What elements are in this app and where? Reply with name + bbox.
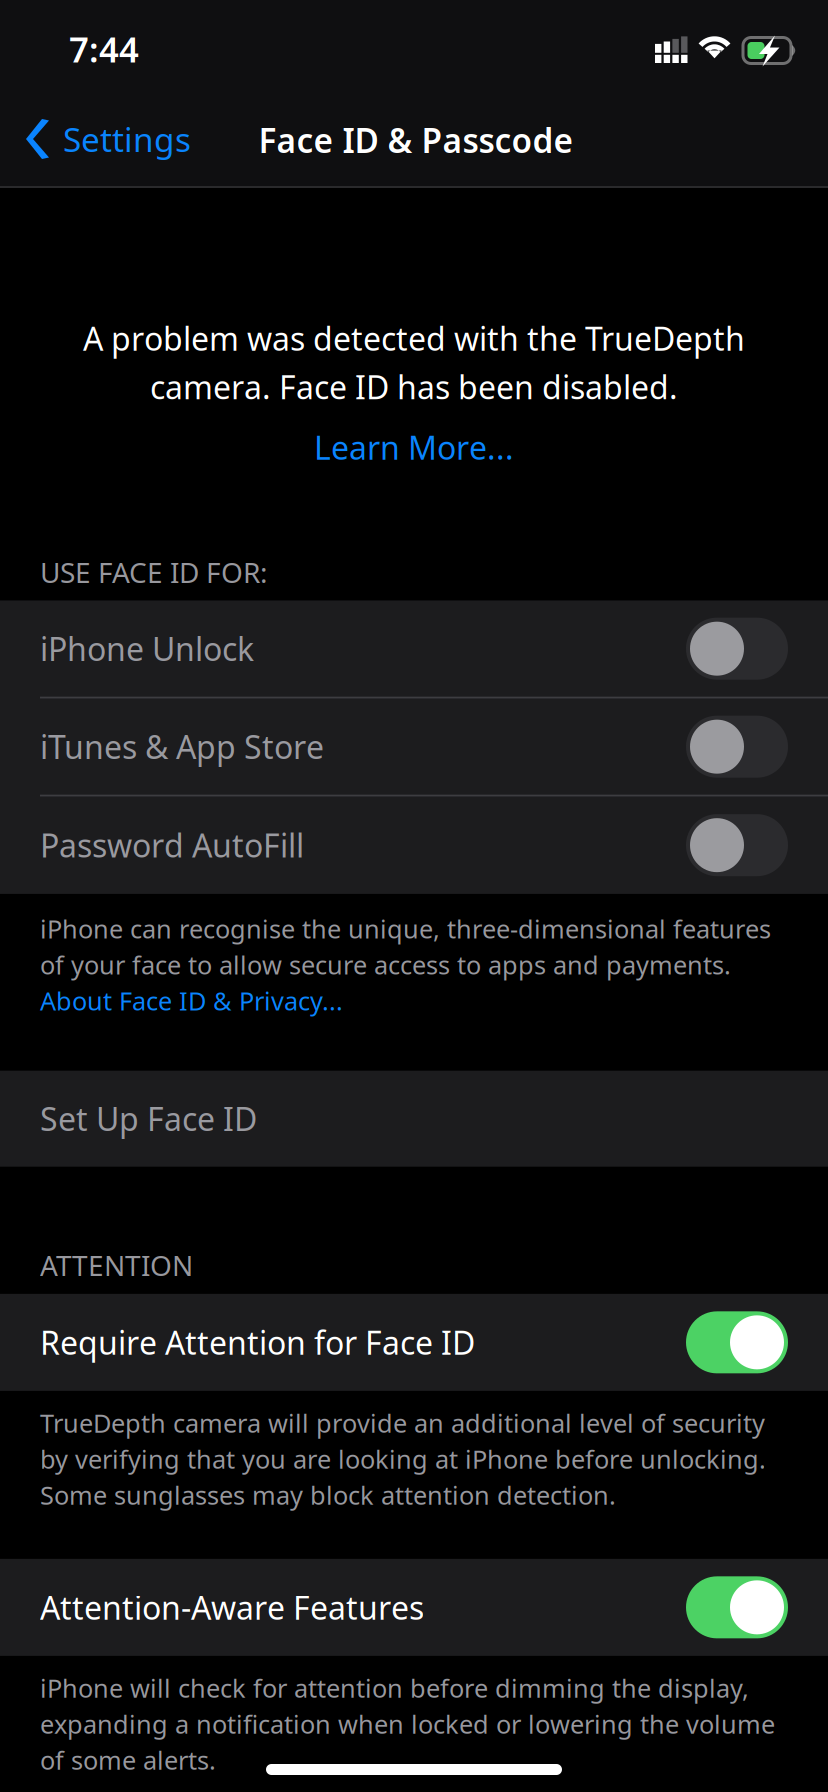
staticText: of some alerts.	[40, 1743, 216, 1777]
staticText: Learn More...	[314, 426, 514, 468]
staticText: Face ID & Passcode	[258, 118, 573, 162]
staticText: iPhone will check for attention before d…	[40, 1671, 749, 1705]
button[interactable]: Password AutoFill	[0, 797, 828, 894]
staticText: Password AutoFill	[40, 824, 304, 866]
staticText: Require Attention for Face ID	[40, 1321, 475, 1364]
staticText: About Face ID & Privacy...	[40, 984, 343, 1017]
staticText: TrueDepth camera will provide an additio…	[40, 1406, 765, 1440]
staticText: iTunes & App Store	[40, 725, 324, 768]
button[interactable]: Learn More...	[314, 426, 514, 468]
button[interactable]: Set Up Face ID	[0, 1071, 828, 1167]
button[interactable]: iTunes & App Store	[0, 699, 828, 795]
staticText: of your face to allow secure access to a…	[40, 948, 731, 981]
staticText: iPhone Unlock	[40, 627, 254, 670]
button[interactable]: Attention-Aware Features	[0, 1559, 828, 1656]
staticText: by verifying that you are looking at iPh…	[40, 1442, 766, 1476]
staticText: ATTENTION	[40, 1247, 193, 1284]
staticText: Some sunglasses may block attention dete…	[40, 1478, 616, 1512]
staticText: A problem was detected with the TrueDept…	[83, 317, 745, 359]
staticText: camera. Face ID has been disabled.	[150, 365, 678, 408]
staticText: Attention-Aware Features	[40, 1586, 424, 1629]
staticText: 7:44	[69, 26, 139, 72]
button[interactable]: iPhone Unlock	[0, 601, 828, 697]
staticText: USE FACE ID FOR:	[40, 553, 268, 591]
button[interactable]: Settings	[0, 90, 207, 186]
staticText: iPhone can recognise the unique, three-d…	[40, 912, 771, 945]
staticText: Settings	[63, 117, 191, 161]
button[interactable]: Require Attention for Face ID	[0, 1294, 828, 1391]
button[interactable]: About Face ID & Privacy...	[40, 983, 343, 1019]
staticText: Set Up Face ID	[40, 1097, 257, 1140]
staticText: expanding a notification when locked or …	[40, 1707, 775, 1741]
